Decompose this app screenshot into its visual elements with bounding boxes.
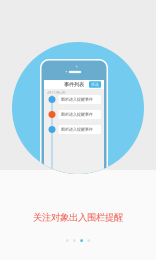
staticText: 筛选 [91, 82, 99, 87]
button[interactable]: 围栏进入提醒事件 [44, 110, 104, 119]
button[interactable]: 围栏进入提醒事件 [44, 95, 104, 104]
staticText: 围栏进入提醒事件 [61, 97, 93, 102]
staticText: 关注对象出入围栏提醒 [33, 212, 123, 223]
staticText: 事件列表 [64, 81, 84, 88]
staticText: 2017-06-20 [47, 89, 65, 95]
button[interactable]: 筛选 [89, 81, 101, 88]
button[interactable]: 围栏进入提醒事件 [44, 125, 104, 134]
staticText: 围栏进入提醒事件 [61, 112, 93, 117]
staticText: 围栏进入提醒事件 [61, 127, 93, 132]
